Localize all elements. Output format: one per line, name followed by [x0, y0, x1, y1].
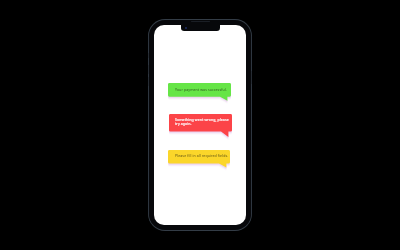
button[interactable]: Please fill in all required fields.	[168, 150, 230, 171]
button[interactable]: Your payment was successful.	[168, 83, 231, 104]
staticText: Something went wrong, please try again.	[175, 117, 230, 126]
staticText: Please fill in all required fields.	[175, 153, 230, 158]
staticText: Your payment was successful.	[175, 87, 230, 92]
button[interactable]: Something went wrong, please try again.	[169, 114, 232, 141]
